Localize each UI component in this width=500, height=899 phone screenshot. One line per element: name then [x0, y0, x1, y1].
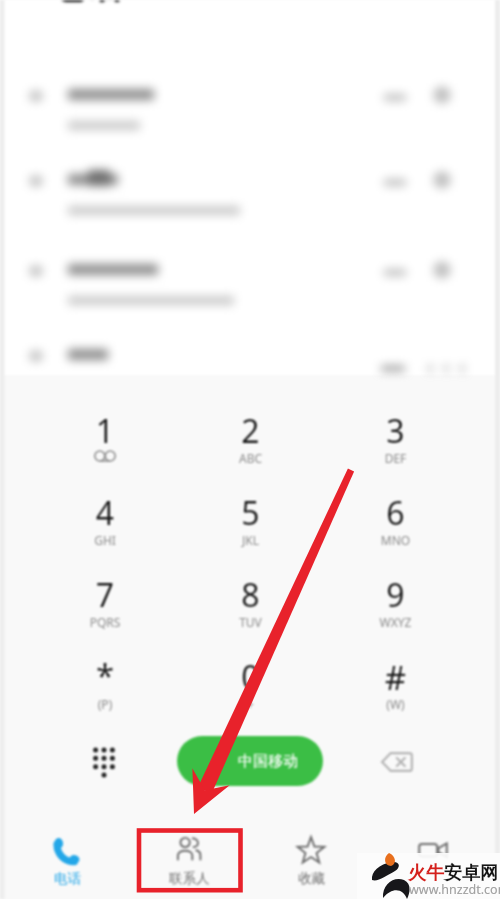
staticText: JKL	[178, 532, 323, 548]
button[interactable]: 1	[32, 388, 178, 470]
staticText: ABC	[178, 450, 323, 466]
staticText: www.hnzzdt.com	[409, 881, 500, 898]
button[interactable]: 5	[178, 470, 323, 552]
button[interactable]: 9	[323, 552, 468, 634]
button[interactable]: 6	[323, 470, 468, 552]
staticText: 4	[32, 491, 178, 535]
button[interactable]: 0	[178, 634, 323, 716]
staticText: PQRS	[32, 614, 178, 630]
button[interactable]: 中国移动	[177, 736, 323, 786]
button[interactable]: 收藏	[250, 823, 372, 899]
button[interactable]: 4	[32, 470, 178, 552]
staticText: 火牛	[408, 862, 444, 885]
button[interactable]: 联系人	[128, 823, 250, 899]
button[interactable]: Hide keypad	[73, 729, 134, 790]
button[interactable]: 3	[323, 388, 468, 470]
button[interactable]: Backspace	[366, 731, 427, 792]
button[interactable]: #	[323, 634, 468, 716]
staticText: 0	[178, 655, 323, 699]
staticText: TUV	[178, 614, 323, 630]
staticText: 联系人	[169, 870, 210, 887]
staticText: 电话	[54, 870, 81, 887]
button[interactable]	[372, 823, 494, 899]
staticText: MNO	[323, 532, 468, 548]
staticText: 7	[32, 573, 178, 617]
staticText: 电话	[46, 0, 122, 9]
staticText: (W)	[323, 696, 468, 712]
staticText: 8	[178, 573, 323, 617]
staticText: 1	[32, 409, 178, 453]
staticText: 6	[323, 491, 468, 535]
staticText: (P)	[32, 696, 178, 712]
button[interactable]: 电话	[6, 823, 128, 899]
staticText: 9	[323, 573, 468, 617]
staticText: +	[178, 696, 323, 712]
staticText: WXYZ	[323, 614, 468, 630]
staticText: 中国移动	[238, 752, 298, 771]
staticText: 收藏	[298, 870, 325, 887]
button[interactable]: 8	[178, 552, 323, 634]
button[interactable]: *	[32, 634, 178, 716]
staticText: 安卓网	[444, 862, 498, 885]
staticText: *	[32, 653, 178, 698]
staticText: #	[323, 655, 468, 700]
staticText: DEF	[323, 450, 468, 466]
staticText: 2	[178, 409, 323, 453]
staticText: GHI	[32, 532, 178, 548]
button[interactable]: 7	[32, 552, 178, 634]
staticText: 5	[178, 491, 323, 535]
button[interactable]: 2	[178, 388, 323, 470]
staticText: 3	[323, 409, 468, 453]
